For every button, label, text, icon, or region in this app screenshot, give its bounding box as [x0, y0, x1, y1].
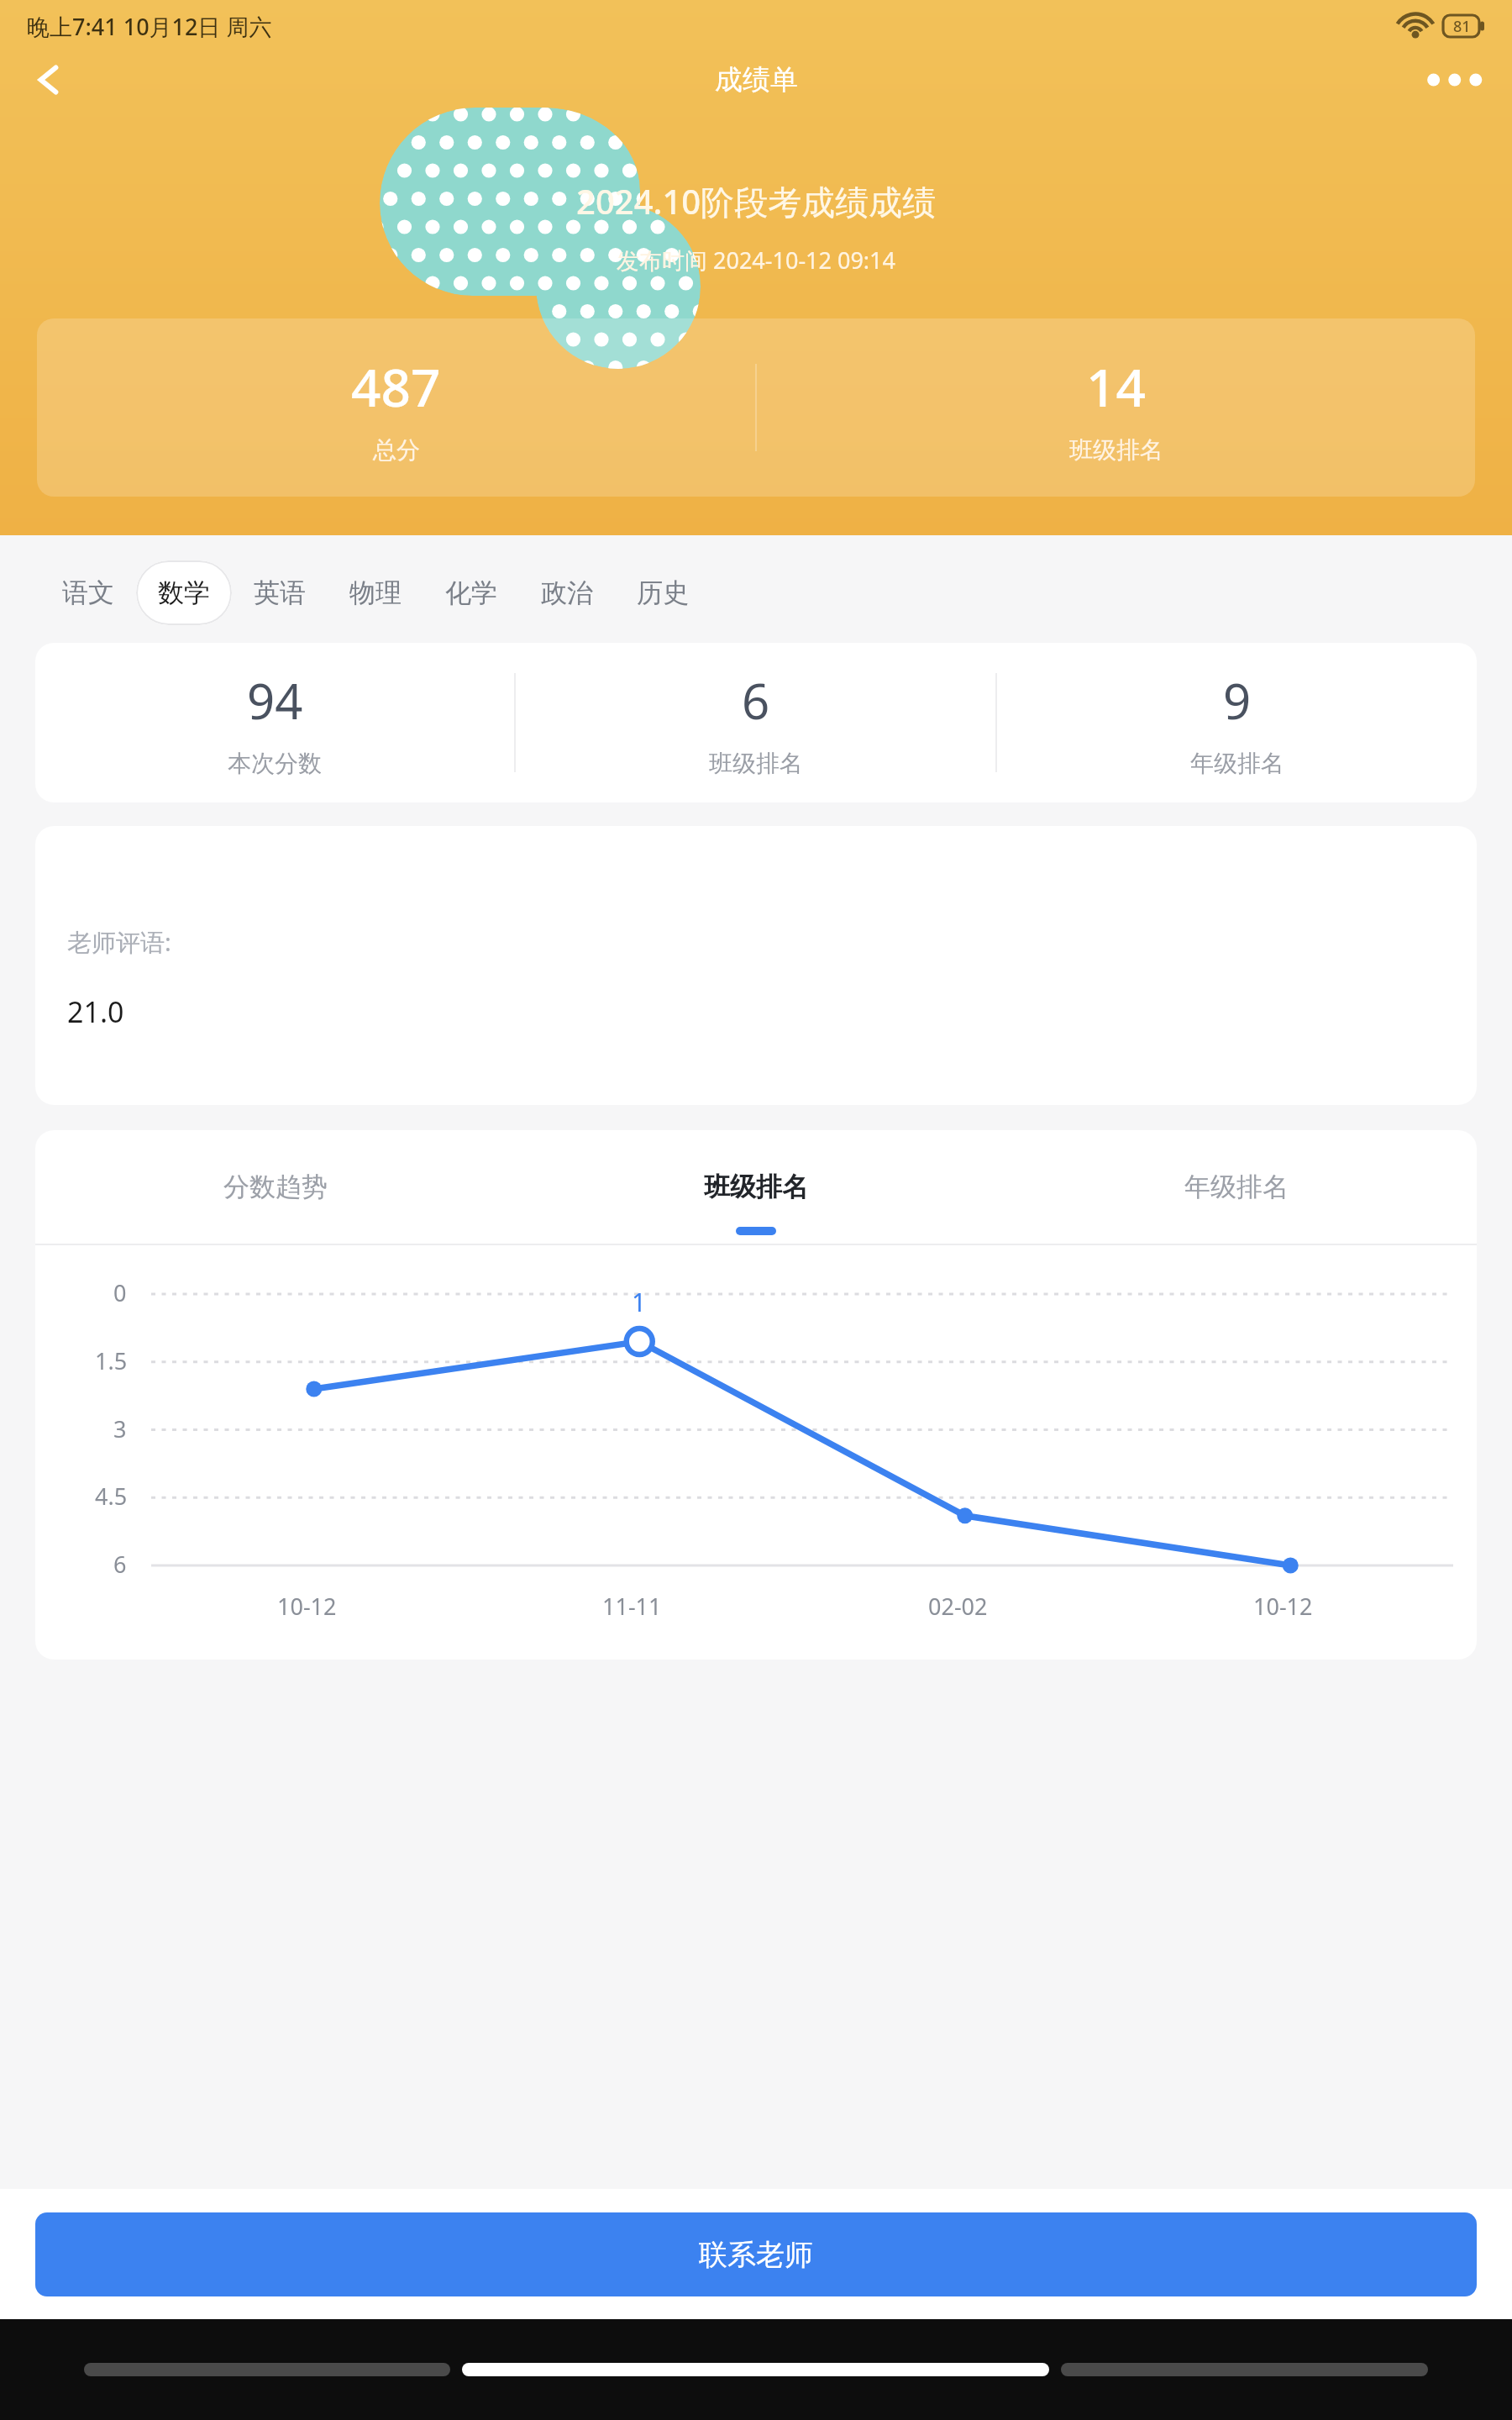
staticText: 本次分数	[228, 749, 322, 778]
staticText: 9	[1223, 667, 1252, 734]
staticText: 11-11	[602, 1591, 662, 1622]
staticText: 化学	[445, 576, 497, 609]
staticText: 老师评语:	[67, 925, 171, 959]
staticText: 2024.10阶段考成绩成绩	[576, 178, 937, 224]
staticText: 数学	[158, 576, 210, 609]
button[interactable]: 年级排名	[996, 1130, 1477, 1244]
staticText: 1	[632, 1285, 647, 1319]
staticText: 1.5	[95, 1345, 128, 1376]
button[interactable]: 英语	[232, 560, 328, 625]
staticText: 联系老师	[699, 2237, 813, 2273]
staticText: 班级排名	[1069, 435, 1163, 465]
staticText: 6	[742, 667, 770, 734]
staticText: 物理	[349, 576, 402, 609]
button[interactable]: 联系老师	[35, 2212, 1477, 2296]
staticText: 发布时间 2024-10-12 09:14	[617, 245, 895, 276]
staticText: 6	[113, 1549, 127, 1580]
button[interactable]: 9	[997, 667, 1477, 778]
staticText: 10-12	[1253, 1591, 1313, 1622]
staticText: 总分	[373, 435, 420, 465]
button[interactable]: 14	[757, 351, 1475, 465]
button[interactable]: 历史	[615, 560, 711, 625]
staticText: 94	[247, 667, 303, 734]
staticText: 语文	[62, 576, 114, 609]
staticText: 历史	[637, 576, 689, 609]
staticText: 02-02	[928, 1591, 988, 1622]
staticText: 英语	[254, 576, 306, 609]
button[interactable]: More options	[1425, 55, 1488, 105]
staticText: 14	[1086, 351, 1146, 422]
button[interactable]: 化学	[423, 560, 519, 625]
staticText: 4.5	[95, 1481, 128, 1512]
staticText: 10-12	[277, 1591, 337, 1622]
staticText: 年级排名	[1190, 749, 1284, 778]
staticText: 81	[1453, 16, 1471, 37]
staticText: 班级排名	[704, 1171, 808, 1203]
button[interactable]: Back	[18, 52, 81, 108]
staticText: 21.0	[67, 992, 124, 1031]
staticText: 487	[351, 351, 441, 422]
button[interactable]: 物理	[328, 560, 423, 625]
staticText: 晚上7:41 10月12日 周六	[27, 11, 272, 42]
staticText: 班级排名	[709, 749, 803, 778]
staticText: 3	[113, 1413, 127, 1444]
button[interactable]: 数学	[136, 560, 232, 625]
button[interactable]: 语文	[40, 560, 136, 625]
button[interactable]: 分数趋势	[35, 1130, 516, 1244]
staticText: 成绩单	[715, 62, 798, 97]
staticText: 政治	[541, 576, 593, 609]
button[interactable]: 6	[516, 667, 995, 778]
button[interactable]: 政治	[519, 560, 615, 625]
button[interactable]: 487	[37, 351, 755, 465]
staticText: 0	[113, 1277, 127, 1308]
button[interactable]: 94	[35, 667, 514, 778]
staticText: 分数趋势	[223, 1171, 328, 1203]
button[interactable]: 班级排名	[516, 1130, 996, 1244]
staticText: 年级排名	[1184, 1171, 1289, 1203]
